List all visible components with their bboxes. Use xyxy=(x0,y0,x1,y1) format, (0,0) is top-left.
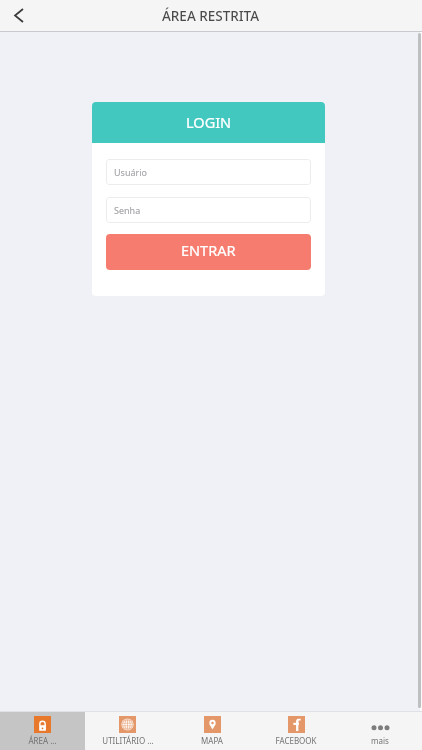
staticText: MAPA xyxy=(201,735,223,746)
staticText: FACEBOOK xyxy=(275,735,317,746)
staticText: ÁREA RESTRITA xyxy=(162,7,260,25)
staticText: Senha xyxy=(114,204,141,216)
button[interactable]: Usuário xyxy=(106,159,311,185)
staticText: ENTRAR xyxy=(181,240,236,260)
button[interactable]: Senha xyxy=(106,197,311,223)
button[interactable]: ENTRAR xyxy=(106,234,311,270)
staticText: LOGIN xyxy=(186,112,232,132)
staticText: Usuário xyxy=(114,166,147,178)
button[interactable]: UTILITÁRIO ... xyxy=(85,712,170,750)
button[interactable]: ÁREA ... xyxy=(0,712,85,750)
button[interactable]: mais xyxy=(338,712,422,750)
staticText: mais xyxy=(371,735,389,746)
staticText: UTILITÁRIO ... xyxy=(102,735,154,746)
button[interactable]: Back xyxy=(0,0,38,31)
button[interactable]: FACEBOOK xyxy=(254,712,338,750)
button[interactable]: MAPA xyxy=(170,712,254,750)
staticText: ÁREA ... xyxy=(28,735,57,746)
